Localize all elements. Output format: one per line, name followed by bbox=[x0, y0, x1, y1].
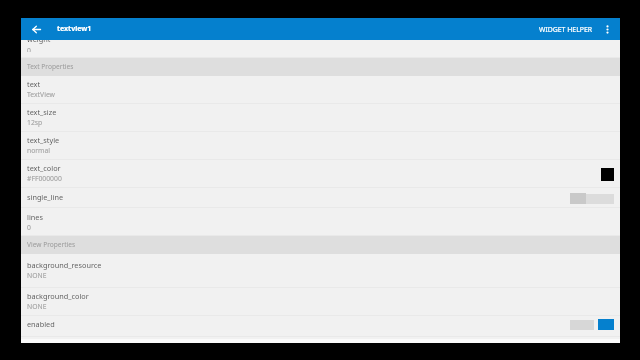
staticText: enabled bbox=[27, 319, 55, 329]
button[interactable]: More options bbox=[598, 20, 616, 38]
staticText: View Properties bbox=[27, 240, 76, 249]
staticText: lines bbox=[27, 212, 43, 222]
button[interactable]: weight bbox=[21, 40, 620, 58]
button[interactable]: background_color bbox=[21, 288, 620, 316]
staticText: 0 bbox=[27, 46, 31, 52]
button[interactable]: text_style bbox=[21, 132, 620, 160]
button[interactable] bbox=[570, 193, 614, 204]
button[interactable]: enabled bbox=[21, 316, 620, 337]
staticText: text_style bbox=[27, 135, 60, 145]
staticText: 0 bbox=[27, 223, 31, 232]
staticText: TextView bbox=[27, 90, 55, 99]
button[interactable]: background_resource bbox=[21, 254, 620, 288]
staticText: 12sp bbox=[27, 118, 43, 127]
button[interactable]: WIDGET HELPER bbox=[534, 21, 598, 38]
staticText: NONE bbox=[27, 302, 47, 311]
staticText: text_size bbox=[27, 107, 57, 117]
button[interactable]: text_color bbox=[21, 160, 620, 188]
staticText: #FF000000 bbox=[27, 174, 62, 183]
staticText: normal bbox=[27, 146, 51, 155]
button[interactable]: lines bbox=[21, 208, 620, 236]
staticText: NONE bbox=[27, 271, 47, 280]
staticText: textview1 bbox=[57, 24, 92, 34]
staticText: background_color bbox=[27, 291, 89, 301]
staticText: WIDGET HELPER bbox=[539, 25, 593, 34]
button[interactable]: single_line bbox=[21, 188, 620, 208]
button[interactable]: text bbox=[21, 76, 620, 104]
staticText: background_resource bbox=[27, 260, 102, 270]
staticText: text bbox=[27, 79, 41, 89]
button[interactable] bbox=[570, 319, 614, 330]
button[interactable]: Back bbox=[28, 21, 44, 37]
staticText: text_color bbox=[27, 163, 61, 173]
staticText: Text Properties bbox=[27, 62, 74, 71]
staticText: single_line bbox=[27, 192, 64, 202]
button[interactable]: text_size bbox=[21, 104, 620, 132]
staticText: weight bbox=[27, 40, 51, 44]
